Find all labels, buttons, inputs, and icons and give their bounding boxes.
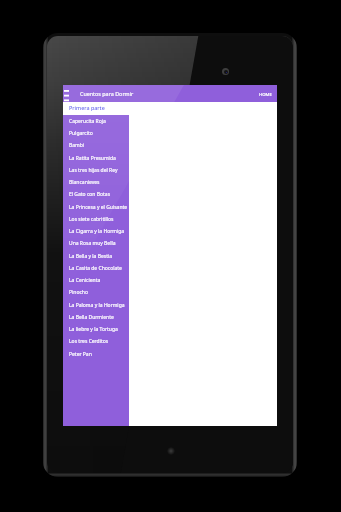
staticText: Pulgarcito [69,130,93,137]
staticText: Una Rosa muy Bella [69,240,116,247]
button[interactable]: El Gato con Botas [63,188,129,200]
button[interactable]: Peter Pan [63,348,129,360]
staticText: Pinocho [69,289,88,296]
button[interactable]: La Cigarra y la Hormiga [63,225,129,237]
staticText: Las tres hijas del Rey [69,167,118,174]
staticText: La Bella Durmiente [69,314,114,321]
staticText: La Cigarra y la Hormiga [69,228,125,235]
button[interactable]: Las tres hijas del Rey [63,164,129,176]
staticText: Peter Pan [69,351,92,358]
button[interactable]: Caperucita Roja [63,115,129,127]
staticText: La liebre y la Tortuga [69,326,118,333]
button[interactable]: La Ratita Presumida [63,152,129,164]
button[interactable]: Los tres Cerditos [63,335,129,347]
button[interactable]: La Princesa y el Guisante [63,201,129,213]
staticText: Bambi [69,142,85,149]
button[interactable]: La Bella y la Bestia [63,250,129,262]
button[interactable]: La Cenicienta [63,274,129,286]
staticText: El Gato con Botas [69,191,111,198]
button[interactable]: Una Rosa muy Bella [63,237,129,249]
button[interactable]: Open navigation menu [63,85,73,102]
button[interactable]: Pulgarcito [63,127,129,139]
staticText: La Princesa y el Guisante [69,204,128,211]
button[interactable]: HOME [253,85,277,102]
staticText: La Paloma y la Hormiga [69,302,125,309]
button[interactable]: La Casita de Chocolate [63,262,129,274]
staticText: Primera parte [69,104,105,111]
staticText: La Ratita Presumida [69,155,116,162]
staticText: La Casita de Chocolate [69,265,122,272]
staticText: HOME [259,91,272,97]
staticText: Cuentos para Dormir [80,90,134,97]
button[interactable]: La Bella Durmiente [63,311,129,323]
staticText: Caperucita Roja [69,118,106,125]
button[interactable]: Los siete cabritillos [63,213,129,225]
staticText: La Cenicienta [69,277,101,284]
staticText: Blancanieves [69,179,100,186]
button[interactable]: Pinocho [63,286,129,298]
button[interactable]: Primera parte [63,102,277,115]
button[interactable]: Blancanieves [63,176,129,188]
staticText: Los siete cabritillos [69,216,114,223]
button[interactable]: La liebre y la Tortuga [63,323,129,335]
button[interactable]: La Paloma y la Hormiga [63,299,129,311]
staticText: Los tres Cerditos [69,338,109,345]
button[interactable]: Bambi [63,139,129,151]
staticText: La Bella y la Bestia [69,253,113,260]
